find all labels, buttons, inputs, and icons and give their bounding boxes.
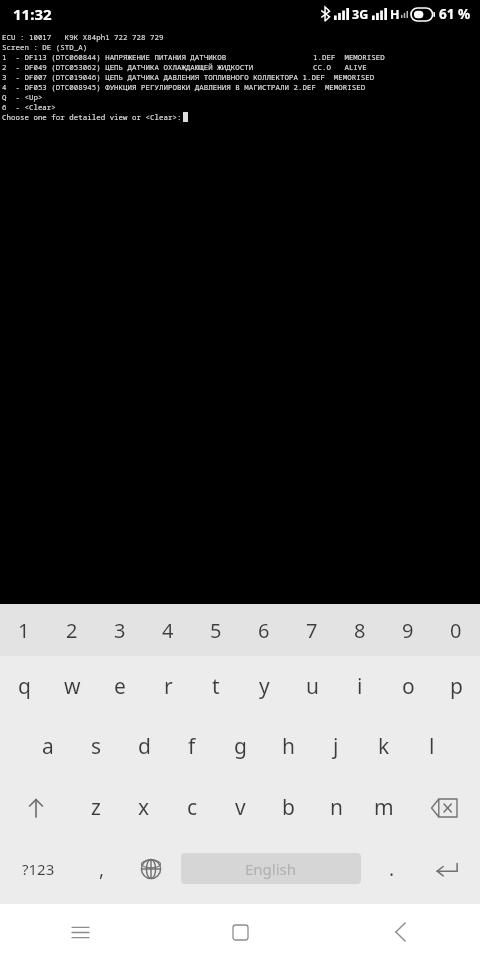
staticText: Choose one for detailed view or <Clear>:: [2, 112, 182, 122]
button[interactable]: f: [168, 716, 216, 777]
button[interactable]: Back: [320, 904, 480, 960]
button[interactable]: 1: [0, 604, 48, 656]
button[interactable]: e: [96, 656, 144, 716]
button[interactable]: 2: [48, 604, 96, 656]
staticText: p: [450, 672, 463, 701]
staticText: 9: [402, 617, 414, 644]
staticText: e: [114, 672, 126, 701]
button[interactable]: z: [72, 777, 120, 838]
staticText: ?123: [22, 859, 55, 879]
button[interactable]: g: [216, 716, 264, 777]
button[interactable]: ?123: [0, 838, 77, 899]
button[interactable]: y: [240, 656, 288, 716]
button[interactable]: Shift: [0, 777, 72, 838]
staticText: h: [282, 732, 295, 761]
staticText: 2 - DF049 (DTC053062) ЦЕПЬ ДАТЧИКА ОХЛАЖ…: [2, 62, 254, 72]
staticText: m: [374, 793, 394, 822]
staticText: w: [64, 672, 81, 701]
staticText: v: [235, 793, 246, 822]
staticText: x: [138, 793, 150, 822]
button[interactable]: x: [120, 777, 168, 838]
button[interactable]: m: [360, 777, 408, 838]
staticText: y: [259, 672, 270, 701]
staticText: t: [212, 672, 220, 701]
staticText: o: [402, 672, 415, 701]
staticText: q: [18, 672, 31, 701]
button[interactable]: 3: [96, 604, 144, 656]
staticText: z: [91, 793, 101, 822]
staticText: f: [188, 732, 196, 761]
button[interactable]: b: [264, 777, 312, 838]
staticText: u: [306, 672, 319, 701]
button[interactable]: u: [288, 656, 336, 716]
button[interactable]: k: [360, 716, 408, 777]
staticText: Q - <Up>: [2, 92, 43, 102]
staticText: 4 - DF053 (DTC008945) ФУНКЦИЯ РЕГУЛИРОВК…: [2, 82, 366, 92]
staticText: 6: [258, 617, 270, 644]
button[interactable]: d: [120, 716, 168, 777]
staticText: 3G: [352, 6, 369, 23]
button[interactable]: s: [72, 716, 120, 777]
staticText: 1: [18, 617, 30, 644]
staticText: ECU : 10017 K9K X84ph1 722 728 729: [2, 32, 164, 42]
staticText: Screen : DE (STD_A): [2, 42, 88, 52]
staticText: d: [138, 732, 151, 761]
staticText: l: [429, 732, 435, 761]
staticText: n: [330, 793, 343, 822]
staticText: b: [282, 793, 295, 822]
button[interactable]: Change language: [126, 838, 175, 899]
button[interactable]: Recent apps: [0, 904, 160, 960]
button[interactable]: j: [312, 716, 360, 777]
button[interactable]: w: [48, 656, 96, 716]
button[interactable]: 5: [192, 604, 240, 656]
staticText: ,: [99, 856, 105, 882]
staticText: 7: [306, 617, 318, 644]
button[interactable]: 6: [240, 604, 288, 656]
staticText: k: [378, 732, 390, 761]
staticText: g: [234, 732, 247, 761]
button[interactable]: English: [175, 838, 367, 899]
button[interactable]: Backspace: [408, 777, 480, 838]
button[interactable]: 8: [336, 604, 384, 656]
staticText: CC.O ALIVE: [313, 62, 367, 72]
button[interactable]: h: [264, 716, 312, 777]
staticText: 61 %: [439, 5, 471, 23]
staticText: r: [164, 672, 173, 701]
button[interactable]: .: [367, 838, 416, 899]
button[interactable]: Home: [160, 904, 320, 960]
staticText: 1 - DF113 (DTC060844) НАПРЯЖЕНИЕ ПИТАНИЯ…: [2, 52, 227, 62]
button[interactable]: o: [384, 656, 432, 716]
staticText: 3 - DF007 (DTC019046) ЦЕПЬ ДАТЧИКА ДАВЛЕ…: [2, 72, 375, 82]
button[interactable]: q: [0, 656, 48, 716]
staticText: 8: [354, 617, 366, 644]
button[interactable]: c: [168, 777, 216, 838]
staticText: 1.DEF MEMORISED: [313, 52, 385, 62]
button[interactable]: 9: [384, 604, 432, 656]
staticText: English: [245, 859, 297, 879]
button[interactable]: n: [312, 777, 360, 838]
button[interactable]: r: [144, 656, 192, 716]
staticText: 3: [114, 617, 126, 644]
button[interactable]: ,: [77, 838, 126, 899]
button[interactable]: Enter: [416, 838, 480, 899]
button[interactable]: l: [408, 716, 456, 777]
button[interactable]: v: [216, 777, 264, 838]
staticText: 4: [162, 617, 174, 644]
staticText: H: [390, 6, 400, 23]
button[interactable]: 7: [288, 604, 336, 656]
staticText: 2: [66, 617, 78, 644]
staticText: 11:32: [13, 4, 52, 24]
button[interactable]: t: [192, 656, 240, 716]
button[interactable]: 4: [144, 604, 192, 656]
staticText: 0: [450, 617, 462, 644]
staticText: 5: [210, 617, 222, 644]
button[interactable]: p: [432, 656, 480, 716]
button[interactable]: 0: [432, 604, 480, 656]
button[interactable]: a: [24, 716, 72, 777]
button[interactable]: i: [336, 656, 384, 716]
staticText: i: [357, 672, 363, 701]
staticText: j: [333, 732, 339, 761]
staticText: a: [42, 732, 54, 761]
staticText: c: [187, 793, 198, 822]
staticText: .: [389, 856, 395, 882]
